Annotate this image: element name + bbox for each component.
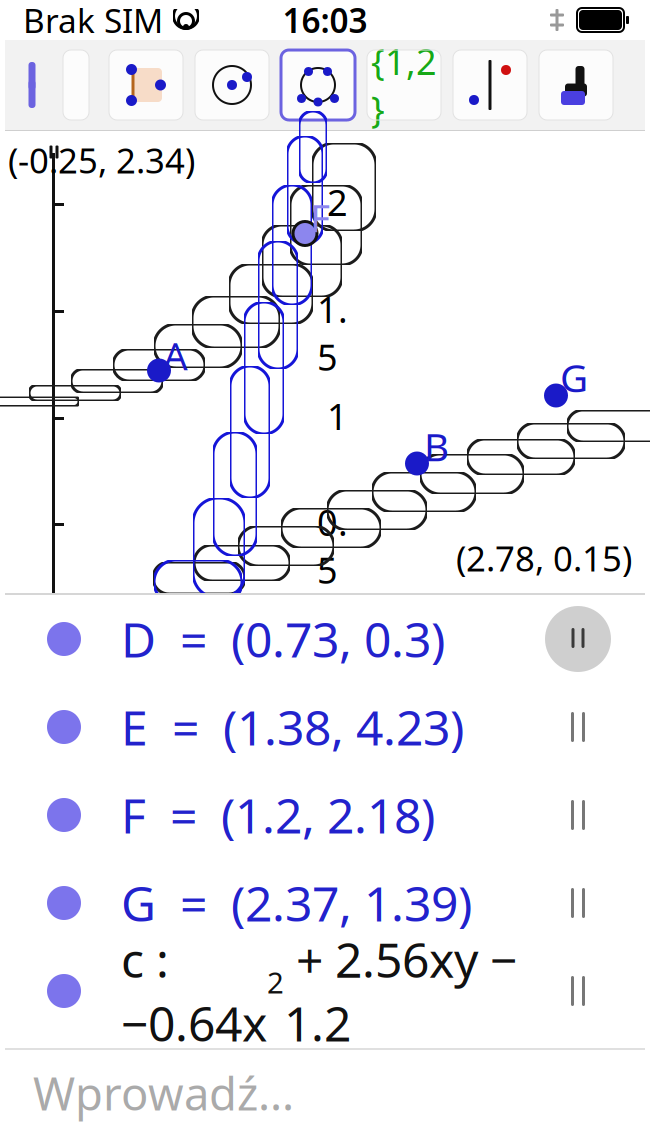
button[interactable]: G = (2.37, 1.39) bbox=[5, 859, 645, 947]
button[interactable]: E = (1.38, 4.23) bbox=[5, 683, 645, 771]
staticText: Wprowadź... bbox=[33, 1063, 294, 1123]
staticText: G = (2.37, 1.39) bbox=[121, 871, 472, 935]
button[interactable]: c : −0.64x bbox=[5, 947, 645, 1035]
button[interactable]: Wielokąt bbox=[109, 50, 183, 120]
staticText: G bbox=[560, 351, 588, 403]
button[interactable]: D = (0.73, 0.3) bbox=[5, 595, 645, 683]
staticText: F = (1.2, 2.18) bbox=[121, 783, 435, 847]
button[interactable]: Prosta bbox=[453, 50, 527, 120]
staticText: + 2.56xy − 1.2 bbox=[284, 927, 517, 1055]
staticText: E = (1.38, 4.23) bbox=[121, 695, 464, 759]
staticText: D = (0.73, 0.3) bbox=[121, 607, 445, 671]
staticText: B bbox=[424, 420, 449, 472]
staticText: 2 bbox=[327, 178, 348, 226]
staticText: F bbox=[310, 191, 330, 243]
staticText: 1.5 bbox=[317, 285, 348, 381]
staticText: 1 bbox=[327, 392, 348, 440]
staticText: D bbox=[212, 583, 240, 635]
staticText: 0.5 bbox=[317, 498, 348, 594]
staticText: 16:03 bbox=[282, 0, 367, 42]
button[interactable]: Wstecz bbox=[5, 50, 61, 120]
button[interactable]: Lista bbox=[367, 50, 441, 120]
button[interactable]: Krzywa stożkowa przez 5 punktów bbox=[281, 50, 355, 120]
staticText: 2 bbox=[267, 962, 284, 1001]
staticText: {1,2} bbox=[371, 37, 437, 133]
staticText: A bbox=[163, 329, 188, 381]
button[interactable]: F = (1.2, 2.18) bbox=[5, 771, 645, 859]
button[interactable]: Wprowadź... bbox=[5, 1050, 645, 1136]
button[interactable]: Styl bbox=[539, 50, 613, 120]
staticText: (-0.25, 2.34) bbox=[8, 137, 195, 183]
staticText: c : −0.64x bbox=[121, 927, 267, 1055]
button[interactable]: Okrąg bbox=[195, 50, 269, 120]
staticText: Brak SIM bbox=[23, 0, 163, 42]
staticText: (2.78, 0.15) bbox=[456, 535, 632, 581]
